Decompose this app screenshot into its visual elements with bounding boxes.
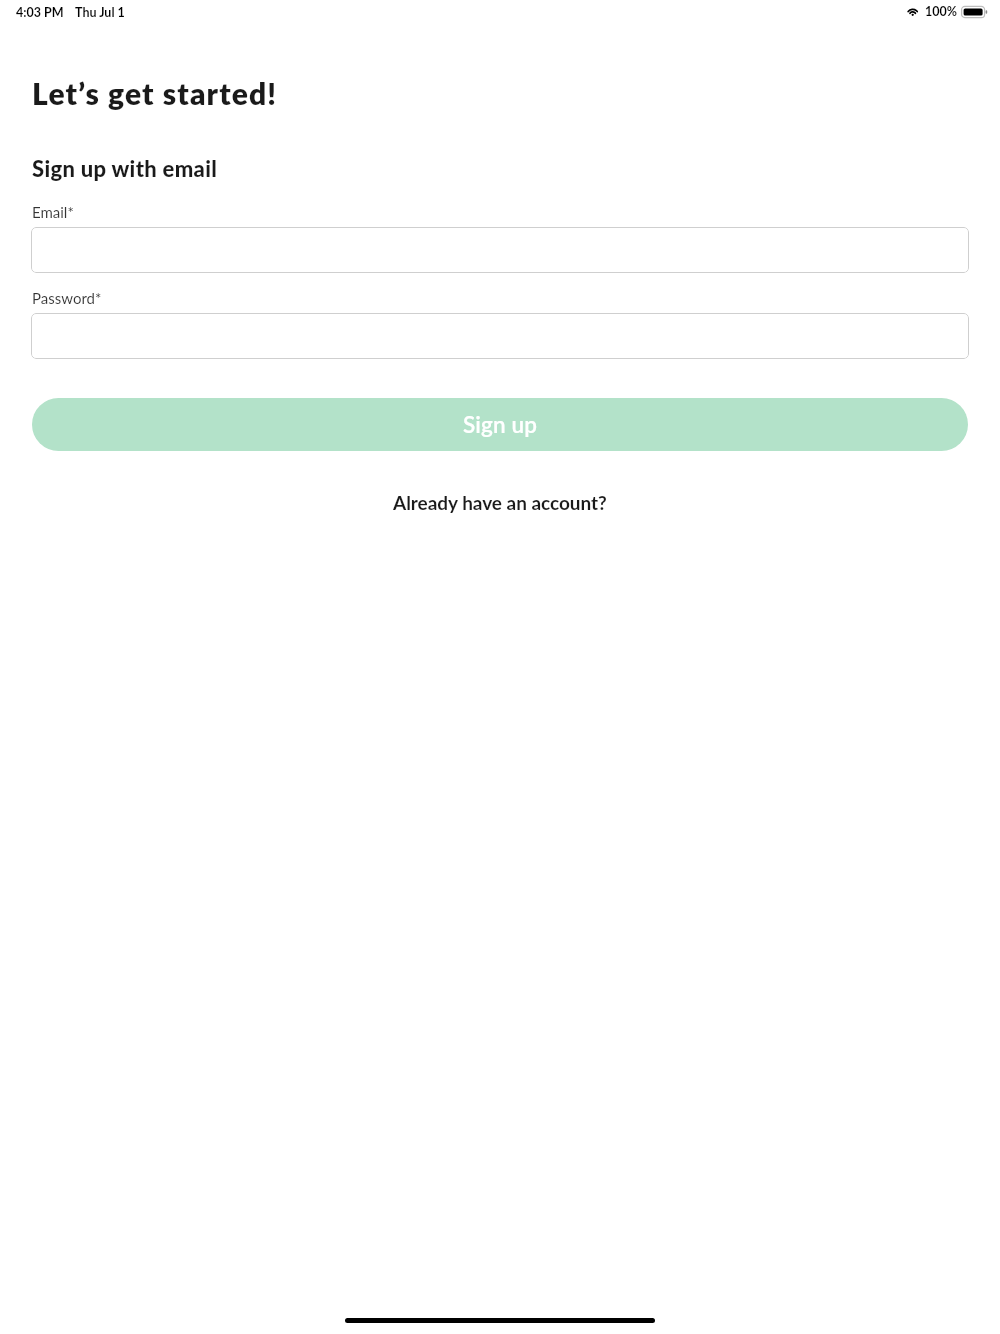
staticText: Password* [32, 289, 102, 307]
staticText: Thu Jul 1 [75, 5, 125, 20]
button[interactable]: Already have an account? [383, 486, 617, 519]
staticText: Sign up [463, 411, 537, 438]
staticText: 4:03 PM [16, 5, 64, 20]
staticText: Sign up with email [32, 155, 218, 181]
other: Battery full [961, 6, 987, 18]
button[interactable] [31, 313, 969, 359]
staticText: 100% [925, 4, 957, 19]
staticText: Let’s get started! [32, 75, 278, 111]
button[interactable] [31, 227, 969, 273]
other: Wi-Fi [906, 6, 920, 17]
staticText: Email* [32, 203, 74, 221]
staticText: Already have an account? [393, 491, 607, 514]
button[interactable]: Sign up [32, 398, 968, 451]
